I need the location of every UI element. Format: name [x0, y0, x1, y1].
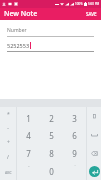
staticText: 6: [72, 130, 77, 141]
button[interactable]: Enter: [87, 162, 101, 180]
staticText: 1: [26, 113, 31, 124]
button[interactable]: 1: [17, 110, 40, 127]
staticText: 2: [49, 113, 54, 124]
staticText: 5252553: [7, 42, 30, 49]
staticText: 9: [72, 148, 77, 159]
staticText: 100%: [75, 2, 83, 6]
staticText: .: [74, 162, 76, 167]
staticText: 5: [49, 130, 54, 141]
staticText: +: [7, 139, 10, 146]
button[interactable]: 0: [40, 162, 63, 180]
button[interactable]: 2: [40, 110, 63, 127]
button[interactable]: Backspace: [87, 144, 101, 162]
staticText: 4: [26, 130, 31, 141]
button[interactable]: 6: [63, 127, 86, 144]
button[interactable]: /: [0, 150, 16, 165]
staticText: Number: [7, 27, 27, 34]
staticText: /: [7, 154, 9, 161]
staticText: ,: [28, 162, 30, 167]
staticText: New Note: [4, 9, 38, 19]
staticText: ABC: [5, 170, 12, 175]
staticText: 0: [49, 166, 54, 177]
button[interactable]: 5: [40, 127, 63, 144]
staticText: *: [7, 111, 10, 118]
button[interactable]: +: [0, 135, 16, 150]
button[interactable]: -: [0, 121, 16, 135]
staticText: 5:50 PM: [88, 2, 100, 6]
button[interactable]: 7: [17, 144, 40, 162]
staticText: SAVE: [86, 11, 97, 17]
button[interactable]: 4: [17, 127, 40, 144]
button[interactable]: 8: [40, 144, 63, 162]
button[interactable]: Settings: [87, 107, 101, 126]
button[interactable]: SAVE: [82, 9, 101, 19]
staticText: 3: [72, 113, 77, 124]
button[interactable]: 9: [63, 144, 86, 162]
staticText: 8: [49, 148, 54, 159]
staticText: 7: [26, 148, 31, 159]
staticText: -: [7, 125, 9, 132]
button[interactable]: *: [0, 107, 16, 121]
button[interactable]: ABC: [0, 165, 16, 180]
button[interactable]: 3: [63, 110, 86, 127]
button[interactable]: Space: [87, 126, 101, 144]
